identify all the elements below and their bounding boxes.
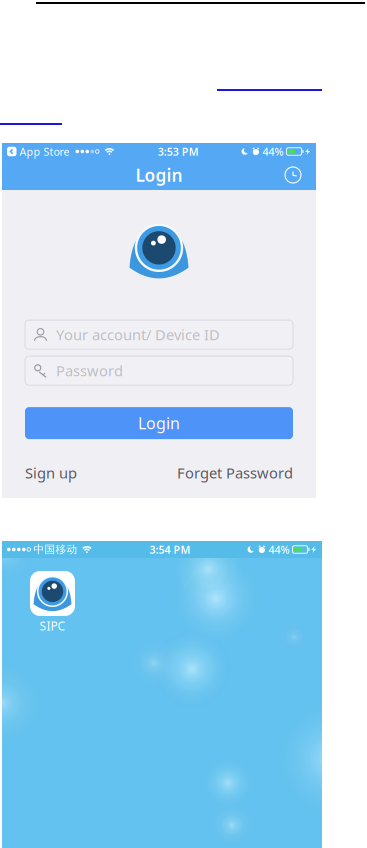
staticText: SIPC xyxy=(39,618,65,634)
staticText: Your account/ Device ID xyxy=(56,325,220,344)
staticText: Password xyxy=(56,361,123,380)
staticText: Login xyxy=(138,412,180,434)
staticText: Login xyxy=(135,163,182,186)
staticText: Forget Password xyxy=(177,463,293,483)
button[interactable]: SIPC xyxy=(30,571,75,634)
staticText: 中国移动 xyxy=(31,543,78,556)
staticText: 44% xyxy=(263,144,284,159)
staticText: 3:53 PM xyxy=(158,144,199,159)
staticText: 44% xyxy=(269,542,290,557)
staticText: Sign up xyxy=(25,463,77,483)
button[interactable]: Login xyxy=(25,407,293,439)
button[interactable]: App Store xyxy=(7,144,69,159)
staticText: 3:54 PM xyxy=(149,542,190,557)
button[interactable]: Forget Password xyxy=(177,463,293,483)
button[interactable]: Sign up xyxy=(25,463,77,483)
staticText: App Store xyxy=(19,144,69,159)
button[interactable]: History xyxy=(285,167,301,183)
